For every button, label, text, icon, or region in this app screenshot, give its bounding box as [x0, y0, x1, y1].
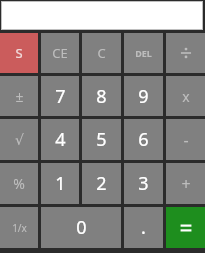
button[interactable]: ± — [0, 76, 38, 116]
button[interactable]: 2 — [82, 163, 121, 204]
button[interactable]: x — [166, 76, 205, 116]
button[interactable]: . — [124, 207, 163, 248]
button[interactable]: Divide — [166, 33, 205, 73]
staticText: 1 — [55, 171, 66, 196]
staticText: + — [181, 173, 191, 195]
button[interactable]: √ — [0, 119, 38, 160]
staticText: 8 — [96, 84, 107, 109]
staticText: 3 — [138, 171, 149, 196]
button[interactable]: + — [166, 163, 205, 204]
button[interactable]: C — [82, 33, 121, 73]
button[interactable]: Equals — [166, 207, 205, 248]
staticText: 9 — [138, 84, 149, 109]
button[interactable]: 1 — [41, 163, 79, 204]
button[interactable]: CE — [41, 33, 79, 73]
button[interactable]: 5 — [82, 119, 121, 160]
button[interactable]: 6 — [124, 119, 163, 160]
staticText: 0 — [76, 215, 87, 240]
staticText: √ — [15, 132, 24, 148]
button[interactable]: 3 — [124, 163, 163, 204]
button[interactable] — [1, 1, 203, 30]
button[interactable]: 1/x — [0, 207, 38, 248]
staticText: . — [141, 215, 146, 240]
staticText: ± — [15, 87, 24, 106]
button[interactable]: - — [166, 119, 205, 160]
staticText: x — [182, 87, 190, 106]
staticText: DEL — [135, 47, 152, 59]
button[interactable]: 7 — [41, 76, 79, 116]
staticText: 5 — [96, 127, 107, 152]
staticText: 1/x — [12, 221, 27, 235]
button[interactable]: S — [0, 33, 38, 73]
staticText: S — [15, 44, 23, 62]
staticText: 6 — [138, 127, 149, 152]
staticText: % — [13, 174, 25, 193]
button[interactable]: 9 — [124, 76, 163, 116]
button[interactable]: % — [0, 163, 38, 204]
button[interactable]: 8 — [82, 76, 121, 116]
button[interactable]: 4 — [41, 119, 79, 160]
staticText: 2 — [96, 171, 107, 196]
staticText: 4 — [55, 127, 66, 152]
staticText: C — [97, 44, 106, 62]
staticText: 7 — [55, 84, 66, 109]
button[interactable]: DEL — [124, 33, 163, 73]
button[interactable]: 0 — [41, 207, 121, 248]
staticText: - — [183, 129, 189, 151]
staticText: CE — [52, 44, 68, 62]
